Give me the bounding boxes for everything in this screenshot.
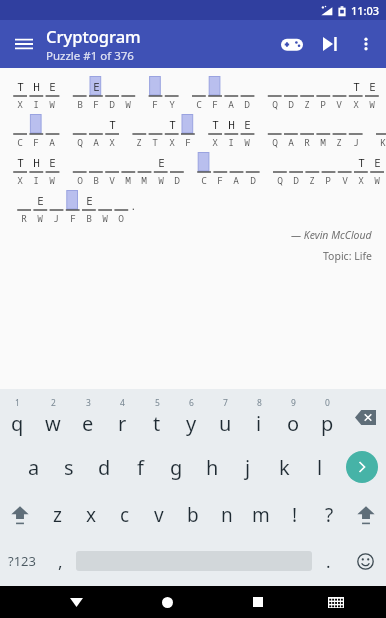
- button[interactable]: c: [108, 492, 142, 538]
- staticText: A: [49, 136, 55, 149]
- staticText: F: [185, 136, 191, 149]
- staticText: B: [86, 212, 92, 225]
- button[interactable]: 3: [70, 392, 105, 442]
- staticText: r: [118, 410, 127, 437]
- staticText: M: [141, 174, 147, 187]
- staticText: n: [221, 502, 233, 528]
- staticText: H: [228, 117, 235, 132]
- staticText: — Kevin McCloud: [291, 228, 372, 242]
- button[interactable]: z: [40, 492, 74, 538]
- button[interactable]: Emoji: [344, 538, 386, 584]
- button[interactable]: More options: [348, 26, 384, 62]
- staticText: T: [109, 117, 116, 132]
- button[interactable]: f: [122, 442, 158, 492]
- staticText: 5: [155, 397, 160, 409]
- staticText: W: [244, 136, 250, 149]
- button[interactable]: Switch keyboard: [316, 586, 356, 618]
- button[interactable]: ?: [312, 492, 346, 538]
- staticText: i: [256, 410, 262, 437]
- staticText: V: [336, 98, 342, 111]
- button[interactable]: 4: [105, 392, 140, 442]
- button[interactable]: x: [74, 492, 108, 538]
- button[interactable]: Shift: [346, 492, 386, 538]
- button[interactable]: Recent apps: [238, 586, 278, 618]
- staticText: C: [201, 174, 207, 187]
- staticText: F: [217, 174, 223, 187]
- staticText: v: [154, 502, 164, 528]
- button[interactable]: 0: [310, 392, 344, 442]
- staticText: E: [86, 193, 93, 208]
- staticText: X: [169, 136, 175, 149]
- staticText: X: [353, 98, 359, 111]
- staticText: T: [358, 155, 365, 170]
- staticText: R: [304, 136, 310, 149]
- staticText: E: [37, 193, 44, 208]
- button[interactable]: k: [266, 442, 302, 492]
- button[interactable]: 6: [174, 392, 208, 442]
- button[interactable]: Open navigation drawer: [6, 26, 42, 62]
- staticText: ?: [325, 502, 334, 528]
- staticText: E: [93, 79, 100, 94]
- staticText: 9: [291, 397, 296, 409]
- staticText: u: [219, 410, 232, 437]
- button[interactable]: 1: [0, 392, 35, 442]
- button[interactable]: d: [86, 442, 122, 492]
- staticText: c: [120, 502, 130, 528]
- staticText: Q: [277, 174, 283, 187]
- button[interactable]: Back: [56, 586, 96, 618]
- button[interactable]: .: [312, 538, 344, 584]
- button[interactable]: g: [158, 442, 194, 492]
- staticText: F: [212, 98, 218, 111]
- button[interactable]: 8: [242, 392, 276, 442]
- staticText: X: [17, 174, 23, 187]
- staticText: D: [293, 174, 299, 187]
- staticText: V: [342, 174, 348, 187]
- button[interactable]: h: [194, 442, 230, 492]
- staticText: 0: [325, 397, 330, 409]
- staticText: H: [33, 155, 40, 170]
- staticText: T: [17, 155, 24, 170]
- staticText: 1: [15, 397, 20, 409]
- button[interactable]: j: [230, 442, 266, 492]
- staticText: .: [326, 550, 331, 573]
- staticText: T: [152, 136, 158, 149]
- button[interactable]: l: [302, 442, 338, 492]
- button[interactable]: 9: [276, 392, 310, 442]
- button[interactable]: 5: [140, 392, 174, 442]
- staticText: p: [321, 410, 334, 437]
- button[interactable]: ?123: [0, 538, 44, 584]
- button[interactable]: 2: [35, 392, 70, 442]
- button[interactable]: 7: [208, 392, 242, 442]
- staticText: W: [125, 98, 131, 111]
- staticText: B: [77, 98, 83, 111]
- staticText: O: [118, 212, 124, 225]
- button[interactable]: Home: [147, 586, 187, 618]
- staticText: A: [228, 98, 234, 111]
- button[interactable]: Next puzzle: [312, 26, 348, 62]
- button[interactable]: v: [142, 492, 176, 538]
- staticText: m: [252, 502, 270, 528]
- button[interactable]: m: [244, 492, 278, 538]
- button[interactable]: Backspace: [344, 392, 386, 442]
- staticText: F: [33, 136, 39, 149]
- button[interactable]: Games: [272, 24, 312, 64]
- staticText: H: [33, 79, 40, 94]
- button[interactable]: ,: [44, 538, 76, 584]
- button[interactable]: n: [210, 492, 244, 538]
- staticText: Z: [336, 136, 342, 149]
- staticText: D: [109, 98, 115, 111]
- staticText: 7: [223, 397, 228, 409]
- button[interactable]: a: [16, 442, 51, 492]
- button[interactable]: !: [278, 492, 312, 538]
- button[interactable]: b: [176, 492, 210, 538]
- button[interactable]: s: [51, 442, 86, 492]
- button[interactable]: Shift: [0, 492, 40, 538]
- button[interactable]: Enter: [346, 451, 378, 483]
- staticText: M: [125, 174, 131, 187]
- staticText: 8: [257, 397, 262, 409]
- staticText: D: [174, 174, 180, 187]
- staticText: T: [212, 117, 219, 132]
- staticText: C: [196, 98, 202, 111]
- staticText: e: [82, 410, 94, 437]
